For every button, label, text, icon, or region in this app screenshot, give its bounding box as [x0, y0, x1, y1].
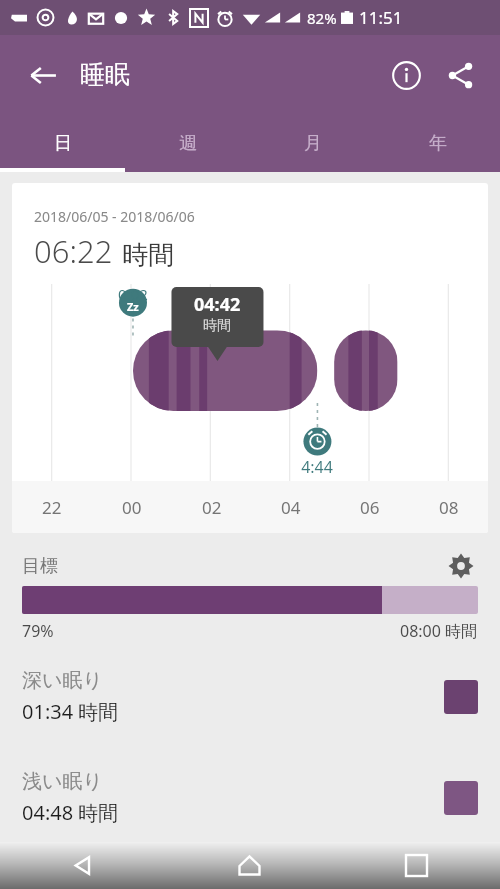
button[interactable]: Share	[436, 51, 484, 99]
staticText: Zz	[127, 299, 139, 314]
staticText: 時間	[203, 317, 231, 335]
staticText: 01:34 時間	[22, 698, 119, 725]
staticText: 月	[304, 132, 322, 155]
staticText: 0:02	[118, 284, 148, 304]
staticText: 11:51	[359, 6, 403, 29]
staticText: 04:42	[194, 292, 241, 317]
staticText: 年	[429, 132, 447, 155]
button[interactable]: 浅い眠り	[0, 769, 500, 826]
staticText: 22	[42, 496, 62, 519]
staticText: 目標	[22, 555, 58, 578]
staticText: 4:44	[301, 456, 333, 478]
button[interactable]: Settings	[444, 549, 478, 583]
staticText: 06	[360, 496, 380, 519]
staticText: 82%	[307, 8, 337, 28]
button[interactable]: Recent apps	[333, 842, 500, 889]
button[interactable]: Back	[0, 842, 166, 889]
button[interactable]: 月	[250, 114, 375, 172]
staticText: 深い眠り	[22, 668, 103, 693]
staticText: 睡眠	[80, 59, 130, 90]
button[interactable]: Back	[22, 54, 64, 96]
button[interactable]: 週	[125, 114, 250, 172]
button[interactable]: 深い眠り	[0, 668, 500, 725]
staticText: 04:48 時間	[22, 799, 119, 826]
staticText: 08:00 時間	[400, 620, 478, 642]
staticText: 00	[122, 496, 142, 519]
staticText: 08	[439, 496, 459, 519]
staticText: 2018/06/05 - 2018/06/06	[34, 207, 195, 226]
staticText: 79%	[22, 620, 54, 642]
staticText: 02	[202, 496, 222, 519]
staticText: 06:22	[34, 230, 113, 272]
button[interactable]: 日	[0, 114, 125, 172]
staticText: 時間	[122, 239, 174, 272]
staticText: 浅い眠り	[22, 769, 103, 794]
staticText: 週	[179, 132, 197, 155]
staticText: 日	[54, 132, 72, 155]
button[interactable]: 年	[375, 114, 500, 172]
button[interactable]: Information	[382, 51, 430, 99]
button[interactable]: Home	[166, 842, 333, 889]
staticText: 04	[281, 496, 301, 519]
